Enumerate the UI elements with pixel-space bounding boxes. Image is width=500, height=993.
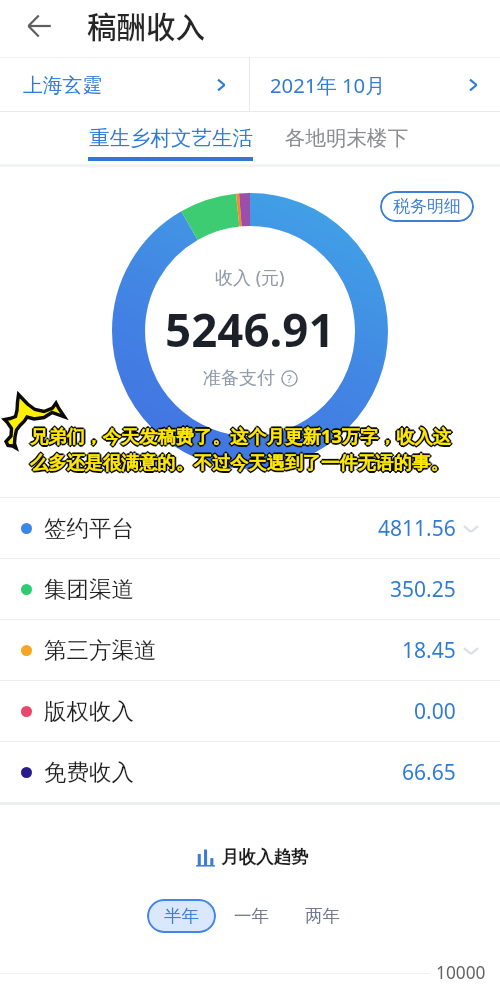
button[interactable]: 重生乡村文艺生活 <box>81 118 261 158</box>
staticText: 准备支付 <box>203 367 275 390</box>
staticText: 版权收入 <box>44 697 134 725</box>
button[interactable]: 一年 <box>216 899 287 933</box>
button[interactable]: Back <box>20 7 57 44</box>
staticText: 第三方渠道 <box>44 636 157 664</box>
staticText: 0.00 <box>414 697 456 726</box>
button[interactable]: 第三方渠道 <box>0 620 500 680</box>
button[interactable]: 2021年 10月 <box>250 58 500 112</box>
staticText: 签约平台 <box>44 514 134 542</box>
staticText: 兄弟们，今天发稿费了。这个月更新13万字，收入这 <box>30 426 451 451</box>
button[interactable]: 集团渠道 <box>0 559 500 619</box>
staticText: 5246.91 <box>165 298 335 360</box>
staticText: 兄弟们，今天发稿费了。这个月更新13万字，收入这 <box>31 423 452 448</box>
staticText: 集团渠道 <box>44 575 134 603</box>
button[interactable]: 版权收入 <box>0 681 500 741</box>
staticText: 66.65 <box>402 758 456 787</box>
staticText: 么多还是很满意的。不过今天遇到了一件无语的事。 <box>29 452 448 475</box>
button[interactable]: 上海玄霆 <box>0 58 249 112</box>
staticText: 么多还是很满意的。不过今天遇到了一件无语的事。 <box>28 451 447 474</box>
staticText: 4811.56 <box>378 514 456 543</box>
staticText: 么多还是很满意的。不过今天遇到了一件无语的事。 <box>30 451 449 474</box>
staticText: 2021年 10月 <box>270 71 386 99</box>
staticText: 收入 (元) <box>215 265 285 290</box>
staticText: 一年 <box>234 905 269 927</box>
button[interactable]: 半年 <box>147 899 216 933</box>
staticText: 月收入趋势 <box>221 846 309 868</box>
staticText: 么多还是很满意的。不过今天遇到了一件无语的事。 <box>30 453 449 476</box>
staticText: 么多还是很满意的。不过今天遇到了一件无语的事。 <box>31 450 450 473</box>
staticText: 么多还是很满意的。不过今天遇到了一件无语的事。 <box>32 451 451 474</box>
staticText: 兄弟们，今天发稿费了。这个月更新13万字，收入这 <box>30 424 451 449</box>
staticText: 么多还是很满意的。不过今天遇到了一件无语的事。 <box>29 450 448 473</box>
staticText: 18.45 <box>402 636 456 665</box>
staticText: 各地明末楼下 <box>285 125 408 151</box>
staticText: 兄弟们，今天发稿费了。这个月更新13万字，收入这 <box>29 423 450 448</box>
staticText: 么多还是很满意的。不过今天遇到了一件无语的事。 <box>31 452 450 475</box>
staticText: 兄弟们，今天发稿费了。这个月更新13万字，收入这 <box>29 425 450 450</box>
button[interactable]: 免费收入 <box>0 742 500 802</box>
button[interactable]: 两年 <box>287 899 358 933</box>
button[interactable]: 税务明细 <box>380 191 474 222</box>
staticText: 兄弟们，今天发稿费了。这个月更新13万字，收入这 <box>32 424 453 449</box>
staticText: 350.25 <box>390 575 456 604</box>
staticText: 10000 <box>436 961 486 985</box>
staticText: 税务明细 <box>393 196 461 217</box>
button[interactable]: 签约平台 <box>0 498 500 558</box>
staticText: ? <box>287 371 292 386</box>
staticText: 兄弟们，今天发稿费了。这个月更新13万字，收入这 <box>30 422 451 447</box>
button[interactable]: 各地明末楼下 <box>277 118 416 158</box>
staticText: 免费收入 <box>44 758 134 786</box>
staticText: 稿酬收入 <box>87 4 206 47</box>
staticText: 重生乡村文艺生活 <box>89 125 253 151</box>
staticText: 上海玄霆 <box>23 73 103 98</box>
staticText: 么多还是很满意的。不过今天遇到了一件无语的事。 <box>30 449 449 472</box>
staticText: 兄弟们，今天发稿费了。这个月更新13万字，收入这 <box>28 424 449 449</box>
staticText: 两年 <box>305 905 340 927</box>
staticText: 半年 <box>164 905 199 927</box>
staticText: 兄弟们，今天发稿费了。这个月更新13万字，收入这 <box>31 425 452 450</box>
